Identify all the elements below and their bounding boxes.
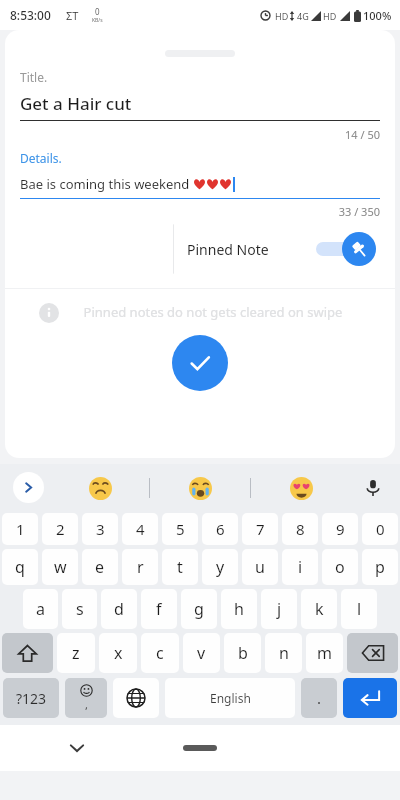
- staticText: HD: [323, 10, 337, 22]
- other: Pinned: [342, 232, 376, 266]
- button[interactable]: Expand toolbar: [13, 472, 44, 503]
- staticText: n: [279, 642, 289, 664]
- button[interactable]: h: [221, 589, 257, 629]
- staticText: Details.: [20, 150, 62, 166]
- staticText: q: [15, 556, 25, 578]
- button[interactable]: s: [62, 589, 97, 629]
- staticText: y: [216, 556, 225, 578]
- button[interactable]: z: [57, 633, 95, 673]
- button[interactable]: Voice input: [358, 473, 388, 503]
- button[interactable]: Save note: [172, 335, 228, 391]
- button[interactable]: Pinned Note: [172, 224, 380, 274]
- button[interactable]: t: [162, 549, 198, 585]
- button[interactable]: 8: [282, 513, 318, 545]
- button[interactable]: f: [141, 589, 177, 629]
- staticText: 8: [296, 519, 305, 539]
- staticText: p: [375, 556, 385, 578]
- button[interactable]: c: [141, 633, 179, 673]
- button[interactable]: o: [322, 549, 358, 585]
- button[interactable]: 7: [242, 513, 278, 545]
- button[interactable]: Backspace: [347, 633, 398, 673]
- button[interactable]: i: [282, 549, 318, 585]
- button[interactable]: r: [122, 549, 158, 585]
- staticText: .: [317, 688, 322, 708]
- staticText: 14 / 50: [20, 127, 380, 142]
- staticText: HD: [275, 10, 289, 22]
- staticText: KB/s: [92, 17, 103, 24]
- button[interactable]: English: [165, 678, 295, 718]
- button[interactable]: n: [265, 633, 302, 673]
- staticText: f: [156, 598, 162, 620]
- button[interactable]: m: [306, 633, 343, 673]
- staticText: Pinned Note: [187, 240, 269, 259]
- staticText: h: [234, 598, 244, 620]
- button[interactable]: 0: [362, 513, 398, 545]
- staticText: i: [298, 556, 303, 578]
- button[interactable]: w: [42, 549, 78, 585]
- staticText: r: [137, 556, 144, 578]
- button[interactable]: x: [99, 633, 137, 673]
- staticText: z: [72, 642, 80, 664]
- staticText: u: [255, 556, 265, 578]
- staticText: 3: [96, 519, 105, 539]
- button[interactable]: Change language: [113, 678, 159, 718]
- staticText: 4G: [297, 10, 309, 22]
- button[interactable]: d: [101, 589, 137, 629]
- button[interactable]: Emoji: [85, 473, 115, 503]
- button[interactable]: u: [242, 549, 278, 585]
- staticText: 1: [16, 519, 25, 539]
- staticText: t: [177, 556, 183, 578]
- staticText: 33 / 350: [20, 204, 380, 219]
- button[interactable]: 6: [202, 513, 238, 545]
- staticText: Pinned notes do not gets cleared on swip…: [71, 303, 355, 321]
- button[interactable]: ?123: [3, 678, 59, 718]
- staticText: 2: [56, 519, 65, 539]
- staticText: 100%: [363, 8, 392, 23]
- button[interactable]: Emoji: [286, 473, 316, 503]
- staticText: 9: [336, 519, 345, 539]
- button[interactable]: 1: [2, 513, 38, 545]
- button[interactable]: y: [202, 549, 238, 585]
- button[interactable]: q: [2, 549, 38, 585]
- staticText: w: [54, 556, 67, 578]
- staticText: e: [95, 556, 105, 578]
- staticText: b: [238, 642, 248, 664]
- button[interactable]: Enter: [343, 678, 397, 718]
- button[interactable]: 3: [82, 513, 118, 545]
- staticText: 4: [136, 519, 145, 539]
- button[interactable]: 9: [322, 513, 358, 545]
- button[interactable]: Get a Hair cut: [20, 92, 132, 115]
- button[interactable]: g: [181, 589, 217, 629]
- staticText: ,: [85, 697, 88, 712]
- button[interactable]: Bae is coming this weekend: [20, 175, 235, 193]
- staticText: 0: [376, 519, 385, 539]
- button[interactable]: v: [183, 633, 220, 673]
- staticText: 5: [176, 519, 185, 539]
- staticText: s: [76, 598, 84, 620]
- button[interactable]: Shift: [2, 633, 53, 673]
- button[interactable]: b: [224, 633, 261, 673]
- button[interactable]: l: [341, 589, 377, 629]
- button[interactable]: k: [301, 589, 337, 629]
- button[interactable]: .: [301, 678, 337, 718]
- staticText: a: [36, 598, 45, 620]
- staticText: 7: [256, 519, 265, 539]
- staticText: d: [114, 598, 124, 620]
- button[interactable]: Home: [183, 745, 217, 751]
- button[interactable]: Emoji and comma: [65, 678, 107, 718]
- button[interactable]: p: [362, 549, 398, 585]
- button[interactable]: j: [261, 589, 297, 629]
- staticText: 8:53:00: [10, 7, 51, 23]
- staticText: k: [315, 598, 324, 620]
- button[interactable]: a: [23, 589, 58, 629]
- button[interactable]: Emoji: [185, 473, 215, 503]
- staticText: g: [194, 598, 204, 620]
- staticText: English: [210, 690, 251, 706]
- button[interactable]: 2: [42, 513, 78, 545]
- button[interactable]: Hide keyboard: [66, 737, 88, 759]
- button[interactable]: 5: [162, 513, 198, 545]
- staticText: 0: [95, 6, 100, 17]
- button[interactable]: 4: [122, 513, 158, 545]
- button[interactable]: e: [82, 549, 118, 585]
- staticText: Bae is coming this weekend: [20, 175, 193, 193]
